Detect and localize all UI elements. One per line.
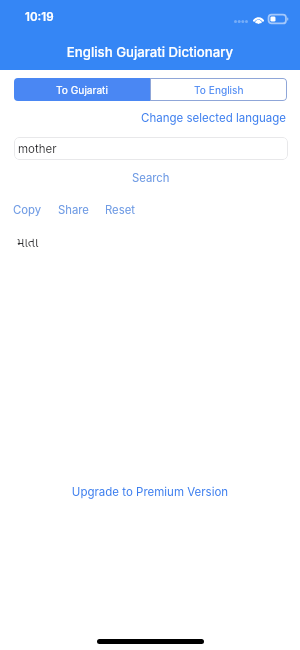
- button[interactable]: Search: [132, 171, 170, 185]
- staticText: mother: [18, 142, 57, 156]
- button[interactable]: Copy: [13, 203, 42, 217]
- staticText: English Gujarati Dictionary: [0, 44, 300, 60]
- button[interactable]: mother: [14, 137, 288, 160]
- staticText: માતા: [17, 234, 39, 251]
- button[interactable]: Change selected language: [141, 111, 287, 125]
- staticText: To English: [194, 84, 244, 96]
- staticText: To Gujarati: [56, 84, 108, 96]
- staticText: 10:19: [25, 10, 54, 24]
- button[interactable]: To Gujarati: [14, 78, 150, 101]
- button[interactable]: Share: [58, 203, 89, 217]
- button[interactable]: Reset: [105, 203, 135, 217]
- button[interactable]: To English: [150, 78, 287, 101]
- button[interactable]: Upgrade to Premium Version: [0, 485, 300, 499]
